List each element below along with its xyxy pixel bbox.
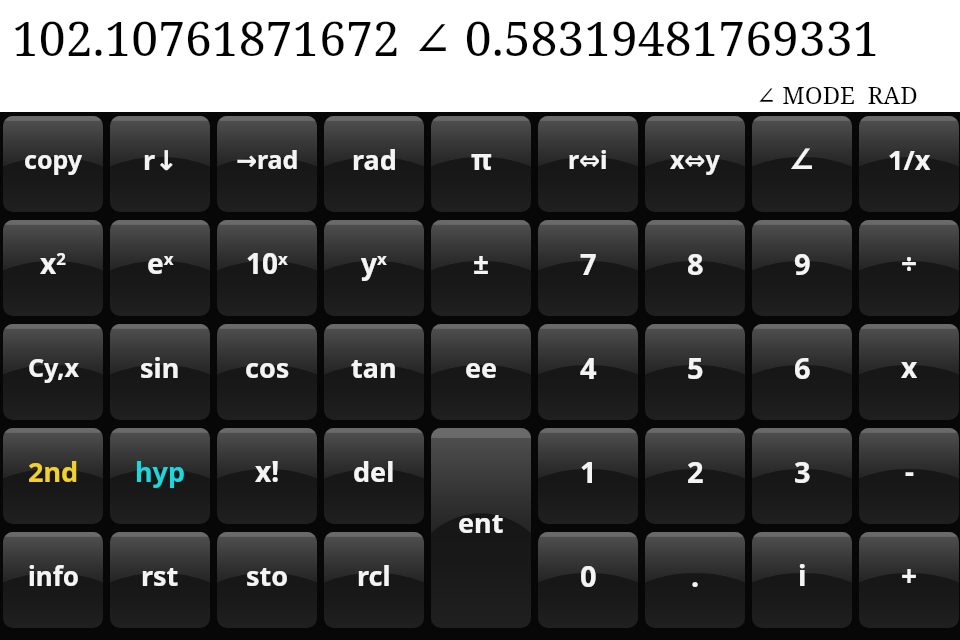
staticText: 5	[687, 348, 704, 387]
button[interactable]: pi	[431, 116, 531, 212]
staticText: del	[353, 453, 395, 490]
staticText: rst	[141, 557, 179, 594]
button[interactable]: plus	[859, 532, 959, 628]
staticText: ±	[473, 244, 490, 282]
staticText: 6	[794, 348, 811, 387]
button[interactable]: divide	[859, 220, 959, 316]
button[interactable]: rad	[324, 116, 424, 212]
button[interactable]: 1	[538, 428, 638, 524]
button[interactable]: 6	[752, 324, 852, 420]
button[interactable]: 2nd	[3, 428, 103, 524]
staticText: rad	[352, 141, 397, 178]
staticText: 2	[687, 452, 704, 491]
button[interactable]: 4	[538, 324, 638, 420]
button[interactable]: ee	[431, 324, 531, 420]
staticText: ee	[465, 349, 498, 386]
staticText: cos	[245, 349, 290, 386]
button[interactable]: yx	[324, 220, 424, 316]
staticText: x!	[255, 452, 280, 490]
staticText: x2	[40, 244, 66, 282]
staticText: ex	[147, 244, 174, 282]
staticText: 0	[580, 556, 597, 595]
button[interactable]: copy	[3, 116, 103, 212]
staticText: 8	[687, 244, 704, 283]
staticText: 9	[794, 244, 811, 283]
button[interactable]: tan	[324, 324, 424, 420]
staticText: 1	[580, 452, 597, 491]
staticText: copy	[24, 142, 83, 176]
button[interactable]: plus minus	[431, 220, 531, 316]
staticText: info	[28, 558, 79, 593]
staticText: 4	[580, 348, 597, 387]
staticText: yx	[361, 244, 387, 282]
button[interactable]: del	[324, 428, 424, 524]
button[interactable]: rst	[110, 532, 210, 628]
staticText: ∠ MODE RAD	[756, 78, 918, 111]
button[interactable]: 2	[645, 428, 745, 524]
button[interactable]: angle	[752, 116, 852, 212]
staticText: x⇔y	[670, 142, 720, 176]
button[interactable]: r↓	[110, 116, 210, 212]
button[interactable]: ex	[110, 220, 210, 316]
button[interactable]: sto	[217, 532, 317, 628]
button[interactable]: multiply	[859, 324, 959, 420]
staticText: 1/x	[888, 141, 931, 178]
button[interactable]: 5	[645, 324, 745, 420]
button[interactable]: 9	[752, 220, 852, 316]
button[interactable]: i	[752, 532, 852, 628]
button[interactable]: 3	[752, 428, 852, 524]
staticText: ÷	[901, 244, 918, 282]
staticText: r↓	[143, 141, 178, 178]
button[interactable]: decimal point	[645, 532, 745, 628]
button[interactable]: 7	[538, 220, 638, 316]
staticText: 102.10761871672 ∠ 0.58319481769331	[12, 5, 880, 70]
staticText: sin	[140, 349, 180, 386]
button[interactable]: hyp	[110, 428, 210, 524]
staticText: .	[691, 556, 700, 595]
button[interactable]: sin	[110, 324, 210, 420]
staticText: i	[798, 556, 807, 594]
staticText: hyp	[135, 453, 186, 490]
button[interactable]: r⇔i	[538, 116, 638, 212]
button[interactable]: rcl	[324, 532, 424, 628]
staticText: x	[901, 348, 918, 386]
button[interactable]: x2	[3, 220, 103, 316]
button[interactable]: ent	[431, 428, 531, 628]
staticText: ∠	[789, 143, 815, 176]
staticText: +	[901, 556, 918, 594]
button[interactable]: cos	[217, 324, 317, 420]
button[interactable]: 1/x	[859, 116, 959, 212]
button[interactable]: info	[3, 532, 103, 628]
staticText: π	[471, 140, 492, 178]
staticText: sto	[246, 557, 289, 594]
button[interactable]: 102.10761871672 ∠ 0.58319481769331	[0, 0, 960, 112]
staticText: 3	[794, 452, 811, 491]
staticText: rcl	[357, 557, 391, 594]
button[interactable]: minus	[859, 428, 959, 524]
staticText: tan	[351, 349, 397, 386]
staticText: 2nd	[28, 453, 79, 490]
button[interactable]: 0	[538, 532, 638, 628]
button[interactable]: 8	[645, 220, 745, 316]
button[interactable]: x⇔y	[645, 116, 745, 212]
button[interactable]: →rad	[217, 116, 317, 212]
staticText: 7	[580, 244, 597, 283]
staticText: -	[905, 452, 914, 490]
staticText: 10x	[246, 244, 288, 282]
button[interactable]: 10x	[217, 220, 317, 316]
staticText: r⇔i	[568, 142, 608, 176]
staticText: Cy,x	[28, 350, 79, 384]
staticText: →rad	[236, 142, 299, 176]
staticText: ent	[458, 504, 504, 541]
button[interactable]: Cy,x	[3, 324, 103, 420]
button[interactable]: x!	[217, 428, 317, 524]
